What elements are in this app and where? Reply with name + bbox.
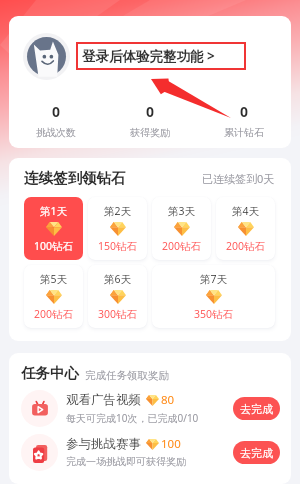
button[interactable]: 观看广告视频 — [21, 389, 280, 427]
staticText: 第1天 — [40, 204, 68, 218]
button[interactable]: 去完成 — [233, 397, 280, 420]
staticText: 第3天 — [168, 204, 196, 218]
staticText: 观看广告视频 — [66, 392, 141, 408]
staticText: 200钻石 — [226, 239, 266, 253]
staticText: 第6天 — [104, 272, 132, 286]
button[interactable]: 第2天 — [88, 197, 147, 260]
staticText: 第4天 — [232, 204, 260, 218]
staticText: 获得奖励 — [130, 126, 170, 139]
button[interactable]: 第5天 — [24, 265, 83, 328]
staticText: 已连续签到0天 — [202, 171, 275, 186]
button[interactable]: 第4天 — [216, 197, 275, 260]
staticText: 300钻石 — [98, 307, 138, 321]
staticText: 0 — [146, 102, 155, 121]
staticText: 100 — [161, 436, 181, 452]
button[interactable]: 第7天 — [152, 265, 275, 328]
button[interactable]: 第6天 — [88, 265, 147, 328]
staticText: 累计钻石 — [224, 126, 264, 139]
staticText: 登录后体验完整功能 > — [82, 47, 215, 65]
staticText: 100钻石 — [34, 239, 74, 253]
staticText: 参与挑战赛事 — [66, 436, 141, 452]
staticText: 150钻石 — [98, 239, 138, 253]
button[interactable]: 第3天 — [152, 197, 211, 260]
staticText: 第5天 — [40, 272, 68, 286]
staticText: 200钻石 — [162, 239, 202, 253]
staticText: 完成任务领取奖励 — [85, 369, 169, 382]
staticText: 350钻石 — [194, 307, 234, 321]
staticText: 任务中心 — [21, 364, 79, 382]
staticText: 完成一场挑战即可获得奖励 — [66, 455, 186, 468]
button[interactable]: 登录后体验完整功能 > — [76, 42, 246, 70]
staticText: 0 — [240, 102, 249, 121]
staticText: 挑战次数 — [36, 126, 76, 139]
staticText: 第7天 — [200, 272, 228, 286]
staticText: 第2天 — [104, 204, 132, 218]
button[interactable]: 第1天 — [24, 197, 83, 260]
staticText: 去完成 — [240, 402, 273, 416]
button[interactable]: 去完成 — [233, 441, 280, 464]
staticText: 200钻石 — [34, 307, 74, 321]
staticText: 去完成 — [240, 446, 273, 460]
button[interactable]: 参与挑战赛事 — [21, 433, 280, 471]
staticText: 每天可完成10次，已完成0/10 — [66, 411, 199, 425]
staticText: 0 — [52, 102, 61, 121]
staticText: 连续签到领钻石 — [24, 169, 126, 187]
staticText: 80 — [161, 392, 175, 408]
